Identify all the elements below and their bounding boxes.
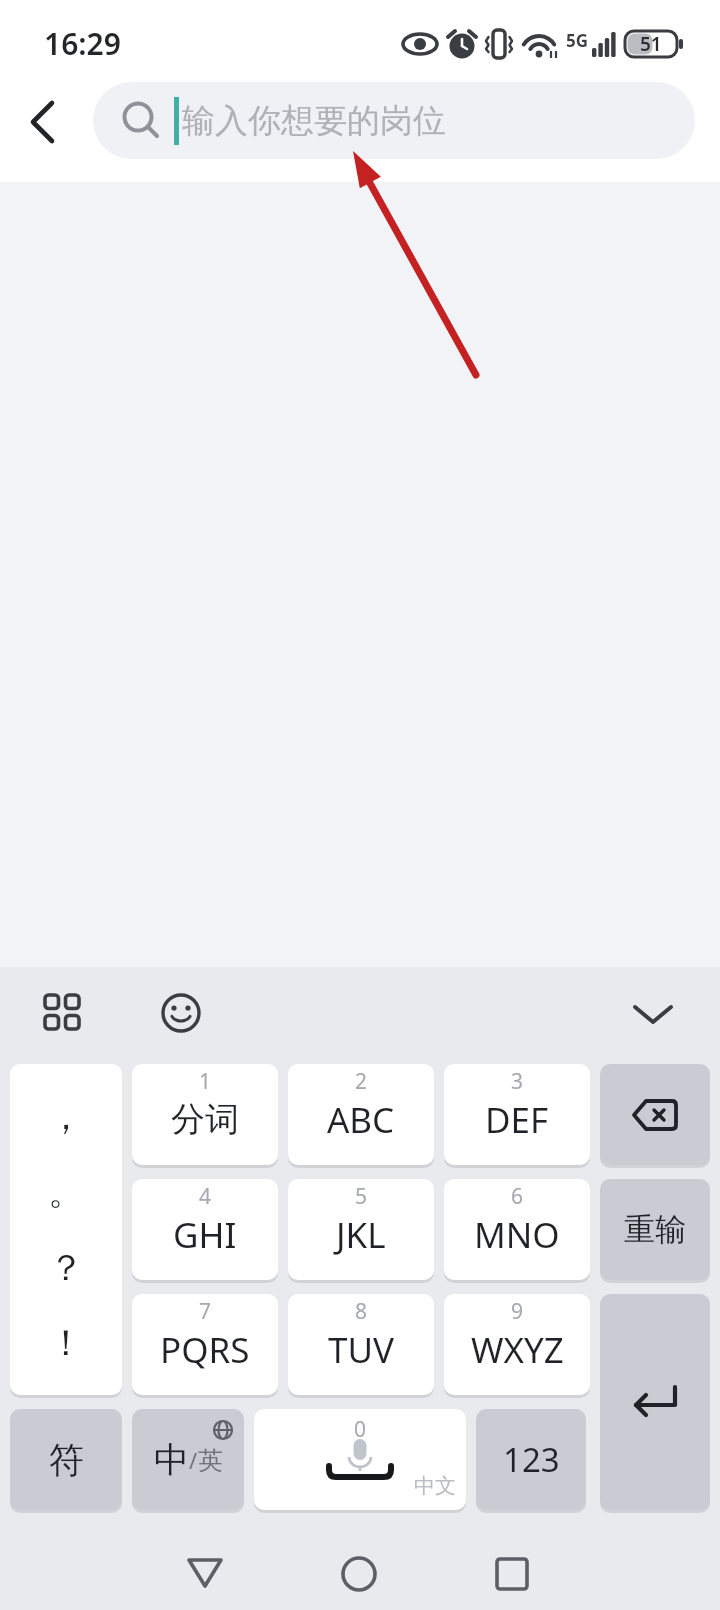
button[interactable]: 6 xyxy=(444,1179,590,1280)
button[interactable] xyxy=(340,1555,378,1593)
staticText: 8 xyxy=(355,1297,368,1326)
staticText: 符 xyxy=(49,1438,84,1482)
button[interactable]: ， xyxy=(10,1064,122,1395)
button[interactable]: 0 xyxy=(254,1409,466,1510)
button[interactable]: 8 xyxy=(288,1294,434,1395)
button[interactable]: 重输 xyxy=(600,1179,710,1280)
button[interactable]: 3 xyxy=(444,1064,590,1165)
staticText: ？ xyxy=(48,1245,84,1290)
staticText: 重输 xyxy=(624,1210,686,1249)
staticText: MNO xyxy=(474,1211,560,1259)
button[interactable]: 中 xyxy=(132,1409,244,1510)
staticText: 2 xyxy=(355,1067,368,1096)
staticText: DEF xyxy=(485,1096,549,1144)
button[interactable] xyxy=(186,1557,226,1591)
staticText: 6 xyxy=(511,1182,524,1211)
button[interactable] xyxy=(161,993,201,1033)
staticText: ！ xyxy=(48,1320,84,1365)
button[interactable]: 9 xyxy=(444,1294,590,1395)
button[interactable] xyxy=(600,1294,710,1510)
staticText: 123 xyxy=(503,1437,560,1482)
button[interactable] xyxy=(630,1001,676,1029)
staticText: 51 xyxy=(640,31,662,57)
staticText: 中文 xyxy=(414,1473,456,1499)
button[interactable]: 2 xyxy=(288,1064,434,1165)
staticText: 5 xyxy=(355,1182,368,1211)
staticText: 7 xyxy=(199,1297,212,1326)
button[interactable] xyxy=(495,1557,531,1593)
staticText: PQRS xyxy=(160,1326,250,1374)
staticText: / xyxy=(189,1445,198,1475)
button[interactable] xyxy=(45,995,81,1031)
staticText: 。 xyxy=(48,1169,84,1214)
staticText: 分词 xyxy=(171,1098,239,1141)
button[interactable]: 4 xyxy=(132,1179,278,1280)
button[interactable] xyxy=(22,100,66,144)
staticText: WXYZ xyxy=(471,1326,564,1374)
staticText: 5G xyxy=(566,29,589,52)
staticText: 0 xyxy=(354,1415,367,1444)
button[interactable]: 5 xyxy=(288,1179,434,1280)
staticText: 4 xyxy=(199,1182,212,1211)
button[interactable]: 7 xyxy=(132,1294,278,1395)
button[interactable]: 123 xyxy=(476,1409,586,1510)
staticText: 16:29 xyxy=(44,23,121,64)
staticText: 9 xyxy=(511,1297,524,1326)
staticText: ， xyxy=(48,1094,84,1139)
staticText: GHI xyxy=(173,1211,237,1259)
button[interactable]: 符 xyxy=(10,1409,122,1510)
button[interactable] xyxy=(600,1064,710,1165)
staticText: TUV xyxy=(328,1326,395,1374)
staticText: JKL xyxy=(336,1211,386,1259)
staticText: ABC xyxy=(327,1096,395,1144)
staticText: 英 xyxy=(198,1445,223,1476)
staticText: 1 xyxy=(199,1067,212,1096)
staticText: 输入你想要的岗位 xyxy=(182,100,446,142)
button[interactable]: 输入你想要的岗位 xyxy=(93,82,695,159)
button[interactable]: 1 xyxy=(132,1064,278,1165)
staticText: 中 xyxy=(154,1438,189,1482)
staticText: 3 xyxy=(511,1067,524,1096)
